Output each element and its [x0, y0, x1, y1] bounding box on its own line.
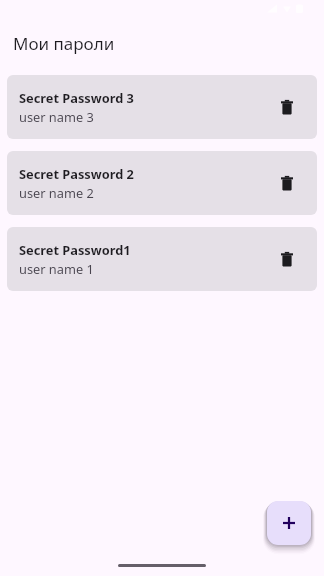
staticText: Secret Password 2 [19, 165, 134, 182]
button[interactable]: Add password [267, 501, 311, 545]
staticText: user name 2 [19, 184, 94, 201]
staticText: user name 1 [19, 260, 94, 277]
staticText: Secret Password1 [19, 241, 131, 258]
staticText: Secret Password 3 [19, 89, 134, 106]
button[interactable]: Secret Password 2 [7, 151, 317, 215]
button[interactable]: Delete [267, 87, 307, 127]
staticText: Мои пароли [13, 32, 115, 54]
button[interactable]: Delete [267, 163, 307, 203]
button[interactable]: Secret Password 3 [7, 75, 317, 139]
staticText: user name 3 [19, 108, 94, 125]
button[interactable]: Secret Password1 [7, 227, 317, 291]
button[interactable]: Delete [267, 239, 307, 279]
